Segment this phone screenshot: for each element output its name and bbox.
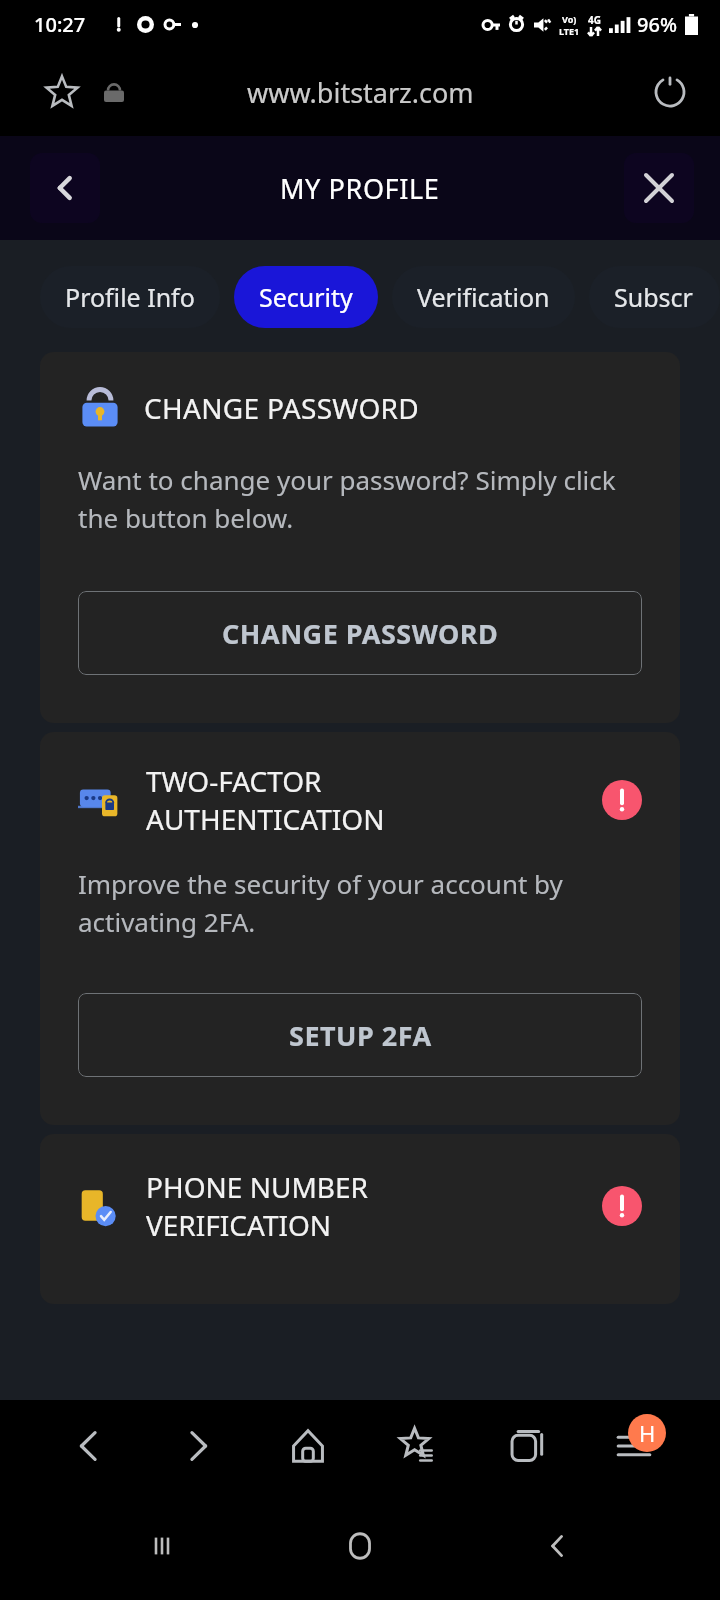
button[interactable]: Tabs [495,1413,561,1479]
staticText: www.bitstarz.com [247,74,474,111]
staticText: CHANGE PASSWORD [222,615,499,652]
staticText: MY PROFILE [280,170,440,207]
staticText: 4G [588,13,601,27]
staticText: 10:27 [34,11,86,38]
button[interactable]: Reload [646,68,694,116]
button[interactable]: Profile Info [40,266,220,328]
staticText: PHONE NUMBER VERIFICATION [146,1168,602,1244]
button[interactable]: Security [234,266,378,328]
staticText: Verification [417,280,550,314]
staticText: Improve the security of your account by … [78,866,642,939]
staticText: H [639,1418,656,1448]
button[interactable]: Forward [165,1413,231,1479]
button[interactable]: SETUP 2FA [78,993,642,1077]
button[interactable]: Subscriptions [589,266,720,328]
staticText: TWO-FACTOR AUTHENTICATION [146,762,602,838]
button[interactable]: Home [324,1510,396,1582]
staticText: Security [259,280,353,314]
button[interactable]: Verification [392,266,575,328]
staticText: CHANGE PASSWORD [144,389,420,427]
button[interactable]: Bookmark [38,68,86,116]
button[interactable]: Site security [94,72,134,112]
button[interactable]: Back [522,1510,594,1582]
button[interactable]: Home [275,1413,341,1479]
staticText: Want to change your password? Simply cli… [78,462,642,535]
staticText: SETUP 2FA [289,1017,432,1054]
button[interactable]: Close [624,153,694,223]
staticText: Subscriptions [614,280,695,314]
button[interactable]: Menu [604,1416,664,1476]
staticText: Profile Info [65,280,195,314]
staticText: Vo) [562,13,577,25]
button[interactable]: Back [30,153,100,223]
staticText: 96% [637,11,677,38]
button[interactable]: Recents [126,1510,198,1582]
button[interactable]: Bookmarks [385,1413,451,1479]
button[interactable]: CHANGE PASSWORD [78,591,642,675]
button[interactable]: Back [56,1413,122,1479]
staticText: LTE1 [559,25,580,37]
